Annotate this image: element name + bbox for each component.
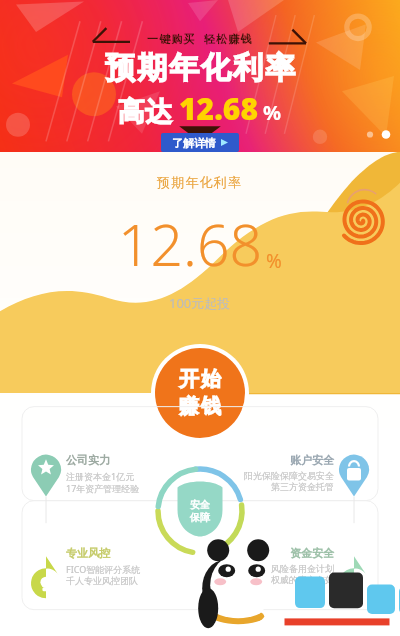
staticText: 100元起投 (169, 294, 231, 312)
staticText: 权威的真实有效 (271, 574, 334, 585)
staticText: 千人专业风控团队 (66, 575, 138, 586)
staticText: 资金安全 (290, 546, 334, 560)
staticText: 第三方资金托管 (271, 481, 334, 492)
staticText: 开始 (178, 367, 222, 392)
button[interactable]: 了解详情 (161, 133, 239, 152)
staticText: 注册资本金1亿元 (66, 470, 135, 482)
button[interactable]: 账户安全 (244, 453, 334, 492)
staticText: 一键购买 轻松赚钱 (147, 31, 253, 46)
staticText: 赚钱 (178, 394, 222, 419)
staticText: 风险备用金计划 (271, 563, 334, 574)
staticText: 17年资产管理经验 (66, 482, 140, 494)
staticText: 高达 (118, 95, 172, 129)
staticText: 账户安全 (290, 453, 334, 467)
button[interactable]: 资金安全 (271, 546, 334, 585)
button[interactable]: 公司实力 (66, 453, 140, 494)
staticText: FICO智能评分系统 (66, 563, 141, 575)
staticText: 预期年化利率 (157, 174, 243, 190)
button[interactable]: 专业风控 (66, 546, 141, 586)
button[interactable]: 开始 (155, 348, 245, 438)
staticText: 专业风控 (66, 546, 110, 560)
staticText: 保障 (190, 511, 210, 524)
staticText: 12.68 (179, 88, 258, 129)
button[interactable]: 一键购买 轻松赚钱 (0, 0, 400, 152)
staticText: 12.68 (118, 205, 263, 283)
staticText: 公司实力 (66, 453, 110, 467)
staticText: % (263, 99, 282, 126)
staticText: 预期年化利率 (104, 49, 296, 87)
staticText: 阳光保险保障交易安全 (244, 470, 334, 481)
staticText: % (266, 248, 282, 274)
staticText: 了解详情 (172, 136, 216, 149)
other: Watermark (190, 526, 400, 636)
staticText: 安全 (190, 498, 210, 511)
